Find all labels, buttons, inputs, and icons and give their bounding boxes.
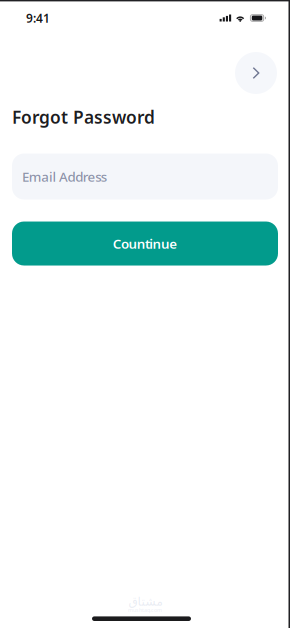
staticText: Countinue bbox=[113, 235, 177, 252]
staticText: 9:41 bbox=[26, 10, 50, 26]
button[interactable]: Email Address bbox=[12, 153, 278, 199]
staticText: مشتاق bbox=[128, 595, 162, 608]
staticText: Email Address bbox=[22, 168, 107, 185]
staticText: Forgot Password bbox=[12, 105, 155, 128]
button[interactable]: Countinue bbox=[12, 221, 278, 265]
staticText: mushtaq.com bbox=[128, 606, 162, 613]
button[interactable]: Next bbox=[235, 52, 277, 94]
